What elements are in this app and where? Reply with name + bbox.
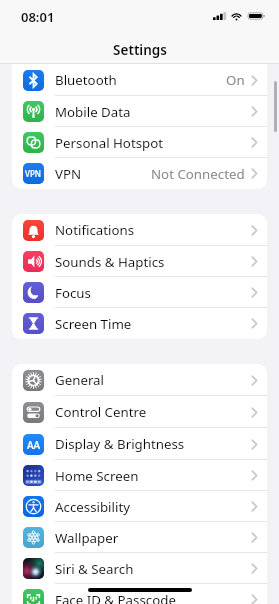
button[interactable]: Accessibility: [12, 491, 267, 522]
staticText: Focus: [55, 284, 91, 302]
button[interactable]: Personal Hotspot: [12, 127, 267, 158]
button[interactable]: AA: [12, 428, 267, 460]
staticText: Display & Brightness: [55, 435, 185, 453]
staticText: Control Centre: [55, 403, 147, 421]
staticText: Home Screen: [55, 467, 139, 485]
staticText: Sounds & Haptics: [55, 253, 165, 271]
button[interactable]: Screen Time: [12, 308, 267, 339]
staticText: 08:01: [21, 8, 55, 26]
button[interactable]: Focus: [12, 277, 267, 308]
staticText: Personal Hotspot: [55, 134, 164, 152]
staticText: Settings: [113, 41, 167, 59]
staticText: Not Connected: [151, 165, 245, 183]
staticText: Screen Time: [55, 315, 132, 333]
button[interactable]: Notifications: [12, 214, 267, 246]
staticText: On: [226, 71, 245, 89]
staticText: Accessibility: [55, 498, 130, 516]
button[interactable]: Bluetooth: [12, 64, 267, 96]
staticText: Mobile Data: [55, 103, 131, 121]
button[interactable]: Siri & Search: [12, 553, 267, 584]
button[interactable]: General: [12, 364, 267, 396]
button[interactable]: Control Centre: [12, 396, 267, 428]
staticText: Siri & Search: [55, 560, 134, 578]
staticText: AA: [27, 438, 41, 452]
staticText: VPN: [25, 168, 42, 179]
button[interactable]: Face ID & Passcode: [12, 584, 267, 604]
staticText: VPN: [55, 165, 82, 183]
button[interactable]: Sounds & Haptics: [12, 246, 267, 277]
button[interactable]: Wallpaper: [12, 522, 267, 553]
button[interactable]: VPN: [12, 158, 267, 189]
staticText: Bluetooth: [55, 71, 117, 89]
staticText: Wallpaper: [55, 529, 119, 547]
staticText: General: [55, 371, 105, 389]
staticText: Notifications: [55, 221, 135, 239]
button[interactable]: Mobile Data: [12, 96, 267, 127]
staticText: Face ID & Passcode: [55, 591, 176, 604]
button[interactable]: Home Screen: [12, 460, 267, 491]
